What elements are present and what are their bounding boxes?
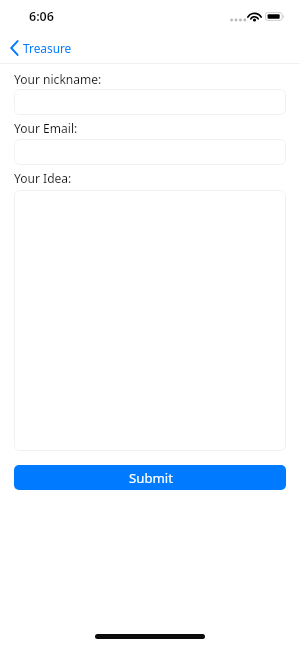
staticText: Submit [129, 469, 173, 487]
button[interactable]: Back to Treasure [8, 36, 72, 60]
staticText: Treasure [23, 40, 72, 56]
button[interactable]: Your nickname input field [14, 89, 286, 115]
button[interactable]: Your Email input field [14, 139, 286, 165]
button[interactable]: Submit [14, 465, 286, 490]
staticText: Your nickname: [14, 71, 102, 86]
staticText: 6:06 [29, 8, 54, 22]
staticText: Your Idea: [14, 170, 72, 185]
staticText: Your Email: [14, 120, 78, 135]
